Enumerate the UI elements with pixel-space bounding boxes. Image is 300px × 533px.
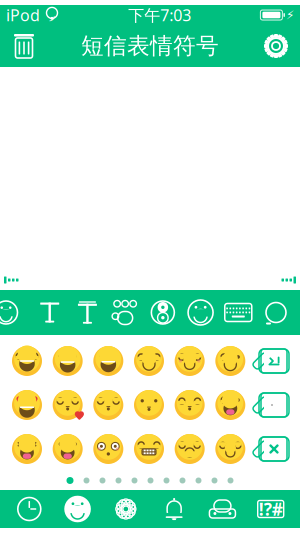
button[interactable]: 文字 [34,290,66,335]
button[interactable]: 表情 [172,428,208,470]
button[interactable]: 最近使用 [10,490,48,528]
staticText: iPod [6,4,40,26]
button[interactable]: 表情 [59,490,97,528]
button[interactable]: 表情 [172,384,208,426]
button[interactable]: 物品 [155,490,193,528]
button[interactable]: 换行 [253,340,291,382]
staticText: 短信表情符号 [81,32,219,60]
staticText: 下午7:03 [128,4,191,26]
button[interactable]: 短信 [260,290,292,335]
button[interactable]: 表情 [50,340,86,382]
button[interactable]: 表情 [131,384,167,426]
staticText: ◞ [49,7,54,22]
button[interactable]: 表情 [90,340,126,382]
staticText: ⚡︎ [286,8,294,22]
button[interactable]: 表情 [131,340,167,382]
button[interactable]: 表情 [50,428,86,470]
button[interactable]: 设置 [254,25,298,67]
button[interactable]: 样式文字 [71,290,103,335]
button[interactable]: 键盘 [222,290,254,335]
button[interactable]: 空白 [253,384,291,426]
button[interactable]: 表情 [172,340,208,382]
button[interactable]: 表情 [9,340,45,382]
button[interactable]: 表情 [90,428,126,470]
button[interactable]: 表情 [50,384,86,426]
button[interactable]: 表情 [9,384,45,426]
button[interactable]: 交通 [203,490,241,528]
button[interactable]: 表情 [212,428,248,470]
button[interactable]: 符号 [252,490,290,528]
button[interactable]: 清空 [2,25,46,67]
button[interactable]: 表情 [90,384,126,426]
button[interactable]: 自然 [107,490,145,528]
button[interactable]: 动物 [109,290,141,335]
button[interactable]: 笑脸 [185,290,217,335]
button[interactable]: 表情 [212,340,248,382]
button[interactable]: 删除 [253,428,291,470]
button[interactable]: 表情 [131,428,167,470]
button[interactable]: 表情 [6,290,30,335]
button[interactable]: 表情 [9,428,45,470]
staticText: !?# [259,497,283,520]
button[interactable]: 表情 [212,384,248,426]
button[interactable]: 符号 [147,290,179,335]
